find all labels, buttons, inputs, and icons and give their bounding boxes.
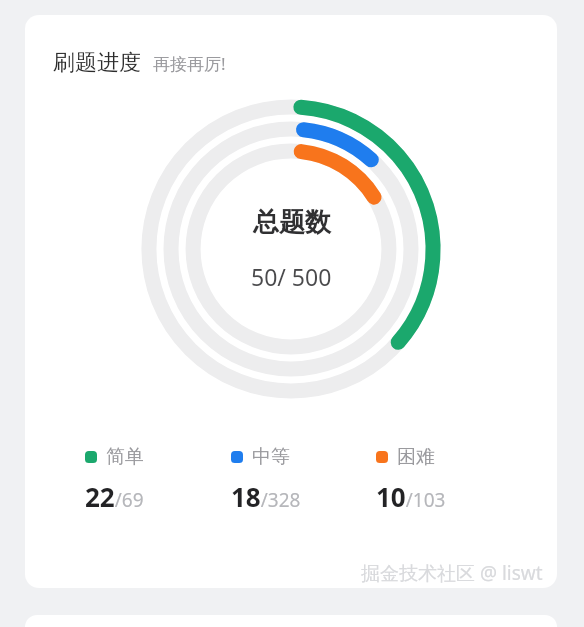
staticText: 10/103 — [376, 479, 446, 514]
button[interactable]: 困难 — [376, 445, 521, 514]
other: 刷题进度环形图 — [131, 89, 451, 409]
button[interactable]: 刷题进度 — [53, 49, 226, 77]
staticText: 掘金技术社区 @ liswt — [361, 560, 543, 586]
staticText: 简单 — [106, 445, 144, 469]
button[interactable]: 中等 — [231, 445, 376, 514]
staticText: 50/ 500 — [251, 261, 332, 292]
staticText: 困难 — [397, 445, 435, 469]
staticText: 18/328 — [231, 479, 301, 514]
staticText: 中等 — [252, 445, 290, 469]
staticText: 再接再厉! — [153, 52, 226, 75]
button[interactable]: 刷题进度 — [25, 15, 557, 588]
staticText: 刷题进度 — [53, 49, 141, 77]
staticText: 22/69 — [85, 479, 144, 514]
button[interactable]: 简单 — [85, 445, 231, 514]
staticText: 总题数 — [253, 206, 331, 239]
